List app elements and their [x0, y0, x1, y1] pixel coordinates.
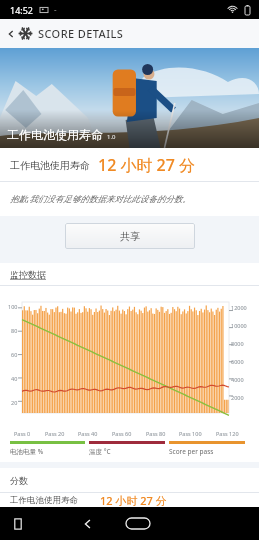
staticText: Pass 100 — [179, 430, 202, 437]
staticText: 抱歉,我们没有足够的数据来对比此设备的分数。 — [10, 193, 191, 205]
button[interactable]: Home — [126, 518, 150, 529]
staticText: Pass 40 — [78, 430, 98, 437]
staticText: Pass 80 — [146, 430, 166, 437]
staticText: 20 — [11, 399, 18, 406]
staticText: 工作电池使用寿命 — [10, 495, 78, 506]
staticText: 14:52 — [10, 4, 34, 16]
staticText: 10000 — [231, 322, 247, 329]
staticText: 工作电池使用寿命 — [10, 159, 90, 172]
staticText: SCORE DETAILS — [38, 26, 124, 41]
staticText: Score per pass — [169, 447, 214, 456]
staticText: 8000 — [231, 340, 244, 347]
staticText: 6000 — [231, 358, 244, 365]
staticText: 12 小时 27 分 — [98, 154, 196, 176]
staticText: 80 — [11, 327, 18, 334]
staticText: Pass 0 — [14, 430, 31, 437]
staticText: Pass 60 — [112, 430, 132, 437]
staticText: Pass 20 — [45, 430, 65, 437]
staticText: 12 小时 27 分 — [100, 493, 167, 507]
button[interactable]: Back — [4, 27, 18, 41]
button[interactable]: Recent apps — [10, 516, 26, 532]
button[interactable]: Back — [80, 516, 96, 532]
staticText: 分数 — [10, 475, 28, 486]
staticText: 60 — [11, 351, 18, 358]
staticText: 2000 — [231, 394, 244, 401]
staticText: - — [54, 4, 57, 15]
staticText: 工作电池使用寿命 — [7, 127, 103, 142]
button[interactable]: 共享 — [65, 223, 195, 249]
staticText: 4000 — [231, 376, 244, 383]
staticText: 40 — [11, 375, 18, 382]
staticText: 12000 — [231, 304, 247, 311]
staticText: Pass 120 — [216, 430, 239, 437]
staticText: 共享 — [120, 230, 140, 243]
staticText: 100 — [8, 303, 18, 310]
staticText: 监控数据 — [10, 269, 46, 280]
staticText: 电池电量 % — [10, 447, 44, 456]
staticText: 温度 °C — [89, 447, 111, 456]
staticText: 1.0 — [107, 133, 116, 141]
